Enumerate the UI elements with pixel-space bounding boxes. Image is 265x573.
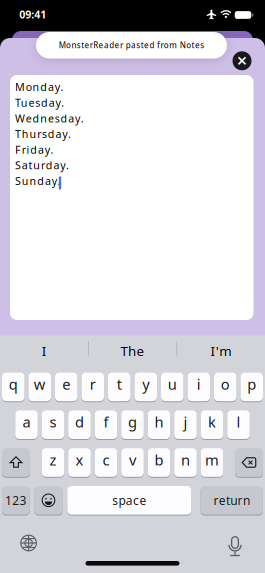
- staticText: d: [75, 412, 84, 432]
- button[interactable]: I: [0, 335, 88, 362]
- button[interactable]: g: [121, 410, 144, 439]
- button[interactable]: Emoji: [34, 486, 62, 515]
- button[interactable]: e: [55, 373, 77, 401]
- button[interactable]: s: [42, 410, 64, 439]
- staticText: Saturday.: [15, 158, 69, 172]
- staticText: 09:41: [19, 7, 46, 22]
- button[interactable]: The: [88, 335, 177, 362]
- staticText: a: [22, 412, 30, 432]
- button[interactable]: return: [200, 486, 263, 515]
- button[interactable]: h: [148, 410, 170, 439]
- button[interactable]: c: [95, 448, 117, 477]
- staticText: I: [42, 342, 47, 360]
- staticText: w: [34, 374, 46, 394]
- button[interactable]: l: [227, 410, 250, 439]
- button[interactable]: d: [68, 410, 91, 439]
- staticText: space: [112, 492, 146, 508]
- button[interactable]: p: [240, 373, 263, 401]
- staticText: m: [205, 450, 219, 469]
- button[interactable]: q: [2, 373, 24, 401]
- button[interactable]: w: [28, 373, 51, 401]
- button[interactable]: o: [214, 373, 236, 401]
- button[interactable]: Delete: [235, 448, 263, 477]
- button[interactable]: j: [174, 410, 197, 439]
- staticText: r: [90, 374, 96, 394]
- button[interactable]: k: [201, 410, 223, 439]
- staticText: c: [102, 450, 109, 469]
- staticText: I'm: [210, 342, 231, 360]
- button[interactable]: v: [121, 448, 144, 477]
- button[interactable]: I'm: [177, 335, 265, 362]
- button[interactable]: t: [108, 373, 130, 401]
- button[interactable]: b: [148, 448, 170, 477]
- button[interactable]: f: [95, 410, 117, 439]
- staticText: i: [197, 374, 201, 394]
- staticText: o: [221, 374, 230, 394]
- button[interactable]: y: [134, 373, 157, 401]
- button[interactable]: 123: [2, 486, 29, 515]
- staticText: z: [49, 450, 56, 469]
- button[interactable]: x: [68, 448, 91, 477]
- staticText: Friday.: [15, 142, 53, 157]
- staticText: Wednesday.: [15, 111, 84, 125]
- staticText: l: [236, 412, 240, 432]
- staticText: Tuesday.: [15, 96, 64, 110]
- staticText: q: [9, 374, 18, 394]
- button[interactable]: Close: [232, 51, 251, 70]
- staticText: x: [75, 450, 83, 469]
- staticText: f: [103, 412, 108, 432]
- staticText: t: [117, 374, 122, 394]
- staticText: MonsterReader pasted from Notes: [59, 40, 204, 50]
- staticText: p: [247, 374, 256, 394]
- staticText: Thursday.: [15, 127, 71, 141]
- staticText: u: [168, 374, 177, 394]
- staticText: k: [208, 412, 216, 432]
- button[interactable]: m: [201, 448, 223, 477]
- staticText: g: [128, 412, 137, 432]
- staticText: The: [121, 342, 144, 360]
- staticText: v: [129, 450, 136, 469]
- button[interactable]: space: [67, 486, 191, 515]
- staticText: b: [154, 450, 163, 469]
- staticText: n: [181, 450, 190, 469]
- staticText: 123: [5, 492, 27, 508]
- button[interactable]: n: [174, 448, 197, 477]
- button[interactable]: Dictate: [229, 532, 241, 552]
- staticText: y: [142, 374, 149, 394]
- staticText: h: [154, 412, 163, 432]
- button[interactable]: u: [161, 373, 183, 401]
- staticText: e: [62, 374, 70, 394]
- button[interactable]: z: [42, 448, 64, 477]
- button[interactable]: Next keyboard: [20, 534, 37, 551]
- staticText: Monday.: [15, 80, 63, 94]
- button[interactable]: Shift: [2, 448, 30, 477]
- staticText: Sunday.: [15, 174, 60, 188]
- button[interactable]: a: [15, 410, 38, 439]
- button[interactable]: i: [187, 373, 210, 401]
- button[interactable]: r: [81, 373, 104, 401]
- staticText: return: [213, 492, 250, 508]
- staticText: j: [183, 412, 187, 432]
- staticText: s: [49, 412, 56, 432]
